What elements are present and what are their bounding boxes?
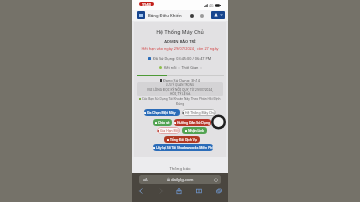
staticText: LƯU Ý QUAN TRỌNG [166,83,195,87]
staticText: Các Bạn Sử Dụng Tài Khoản Này Theo Phản … [142,97,221,101]
staticText: Gia Hạn Mới [160,128,180,133]
button[interactable]: Chia sẻ [153,119,172,126]
staticText: Thông báo [132,166,228,172]
staticText: Tổng Đài Dịch Vụ [170,137,197,142]
staticText: 11:53 [142,2,151,6]
button[interactable]: Alerts [190,14,194,18]
staticText: Đa Chọn Một Máy Chủ [147,110,180,115]
staticText: 4G [209,3,214,8]
button[interactable]: Bookmarks [194,186,203,195]
button[interactable]: Help [200,14,204,18]
staticText: Hệ Thống Máy Chủ [134,28,226,35]
staticText: Hướng Dẫn Sử Dụng [177,120,211,125]
staticText: Kết nối : Thời Gian : [164,65,202,70]
staticText: Chia sẻ [158,120,170,125]
staticText: ADMIN BẢO TRÌ [134,39,226,44]
staticText: Hết hạn vào ngày 29/07/2024, còn 27 ngày [134,46,226,51]
button[interactable]: Menu [137,11,145,19]
button[interactable]: ᴀA [139,175,221,184]
button[interactable]: Tabs [214,186,223,195]
staticText: dailylg.com [171,177,194,183]
button[interactable]: Share [174,186,183,195]
staticText: Hệ Thống Máy Chủ [185,110,216,115]
staticText: VUI LÒNG ĐỌC KỸ NỘI QUY, TỪ 29/07/2024, [147,88,213,92]
button[interactable]: Hướng Dẫn Sử Dụng [174,119,211,126]
button[interactable]: Đa Chọn Một Máy Chủ [144,109,180,116]
staticText: HỎI, TỶ LỆ 6d. [170,92,191,96]
button[interactable]: Back [136,186,145,195]
staticText: ᴀA [143,177,148,182]
staticText: Đã Sử Dụng: 03:45:00 / 06:47 PM [153,56,212,61]
staticText: Đang Sử Dụng: 3h14 [163,78,200,83]
button[interactable]: Lấy lại Số Tài Shadowsocks Miễn Phí [153,144,213,151]
staticText: Đúng [134,102,226,106]
staticText: Nhận Link [188,128,205,133]
button[interactable]: Hệ Thống Máy Chủ [182,109,216,116]
staticText: Bảng Điều Khiển [148,13,182,19]
button[interactable]: Gia Hạn Mới [157,127,180,134]
button[interactable]: Account [211,11,225,19]
button[interactable]: Forward [156,186,165,195]
button[interactable]: Tổng Đài Dịch Vụ [164,136,200,143]
staticText: Lấy lại Số Tài Shadowsocks Miễn Phí [156,145,213,150]
button[interactable]: Nhận Link [182,127,207,134]
